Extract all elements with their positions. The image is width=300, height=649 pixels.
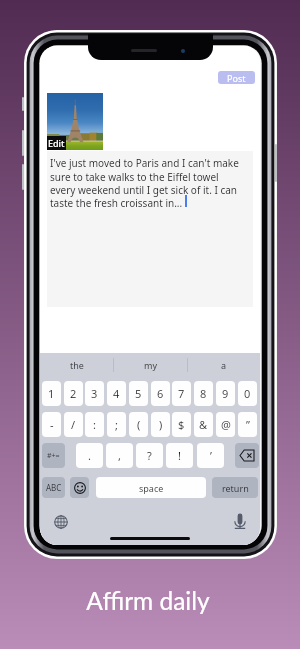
button[interactable]: Edit xyxy=(47,136,66,150)
staticText: #+= xyxy=(47,451,60,461)
staticText: 0 xyxy=(244,386,251,401)
button[interactable]: ! xyxy=(166,443,193,468)
staticText: ; xyxy=(115,417,118,432)
staticText: 4 xyxy=(113,386,120,401)
staticText: Edit xyxy=(48,137,65,149)
button[interactable]: ( xyxy=(129,412,148,437)
button[interactable]: / xyxy=(64,412,83,437)
button[interactable]: Post xyxy=(218,71,255,84)
button[interactable]: 2 xyxy=(64,381,83,406)
button[interactable]: #+= xyxy=(42,443,65,468)
staticText: a xyxy=(221,359,227,371)
button[interactable]: & xyxy=(194,412,213,437)
button[interactable]: ” xyxy=(238,412,257,437)
button[interactable]: 9 xyxy=(216,381,235,406)
other: Emoji xyxy=(74,482,86,494)
staticText: $ xyxy=(178,417,185,432)
button[interactable]: 6 xyxy=(151,381,170,406)
button[interactable]: @ xyxy=(216,412,235,437)
button[interactable]: , xyxy=(106,443,133,468)
staticText: return xyxy=(222,482,249,494)
staticText: ” xyxy=(246,417,250,432)
staticText: , xyxy=(118,448,121,463)
button[interactable]: - xyxy=(42,412,61,437)
button[interactable]: . xyxy=(76,443,103,468)
staticText: ? xyxy=(147,448,152,463)
button[interactable]: : xyxy=(85,412,104,437)
staticText: ( xyxy=(137,417,141,432)
button[interactable]: 0 xyxy=(238,381,257,406)
other: Backspace xyxy=(240,450,254,461)
button[interactable]: 3 xyxy=(85,381,104,406)
button[interactable]: 4 xyxy=(107,381,126,406)
button[interactable]: ’ xyxy=(197,443,224,468)
button[interactable]: ; xyxy=(107,412,126,437)
button[interactable]: I've just moved to Paris and I can't mak… xyxy=(47,151,253,307)
staticText: : xyxy=(93,417,96,432)
staticText: / xyxy=(71,417,76,432)
button[interactable]: ABC xyxy=(42,477,65,498)
staticText: ABC xyxy=(46,482,62,493)
staticText: - xyxy=(50,417,54,432)
staticText: 7 xyxy=(178,386,185,401)
button[interactable]: a xyxy=(187,353,260,377)
staticText: 5 xyxy=(135,386,142,401)
button[interactable]: $ xyxy=(172,412,191,437)
button[interactable]: 7 xyxy=(172,381,191,406)
staticText: Post xyxy=(227,72,246,84)
button[interactable]: 5 xyxy=(129,381,148,406)
button[interactable]: Switch keyboard language xyxy=(51,512,71,532)
staticText: . xyxy=(88,448,91,463)
button[interactable]: ) xyxy=(151,412,170,437)
staticText: Affirm daily xyxy=(0,586,298,615)
staticText: 2 xyxy=(70,386,77,401)
staticText: 6 xyxy=(157,386,164,401)
button[interactable]: my xyxy=(114,353,187,377)
button[interactable]: Emoji xyxy=(70,477,89,498)
staticText: ! xyxy=(178,448,181,463)
button[interactable]: return xyxy=(212,477,258,498)
staticText: @ xyxy=(221,417,231,432)
staticText: & xyxy=(199,417,208,432)
button[interactable]: space xyxy=(96,477,206,498)
button[interactable]: Backspace xyxy=(235,443,259,468)
staticText: space xyxy=(139,482,164,494)
button[interactable]: 1 xyxy=(42,381,61,406)
staticText: 9 xyxy=(222,386,229,401)
staticText: ’ xyxy=(210,448,212,463)
button[interactable]: 8 xyxy=(194,381,213,406)
staticText: 1 xyxy=(48,386,55,401)
button[interactable]: the xyxy=(40,353,114,377)
staticText: my xyxy=(144,359,158,371)
button[interactable]: Dictation xyxy=(230,511,250,531)
staticText: I've just moved to Paris and I can't mak… xyxy=(50,156,242,209)
button[interactable]: ? xyxy=(136,443,163,468)
staticText: the xyxy=(70,359,84,371)
staticText: 8 xyxy=(200,386,207,401)
staticText: 3 xyxy=(91,386,98,401)
staticText: ) xyxy=(159,417,163,432)
